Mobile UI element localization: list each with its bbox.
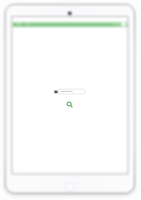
button[interactable]: Tablet showing a search app screen <box>0 0 141 200</box>
